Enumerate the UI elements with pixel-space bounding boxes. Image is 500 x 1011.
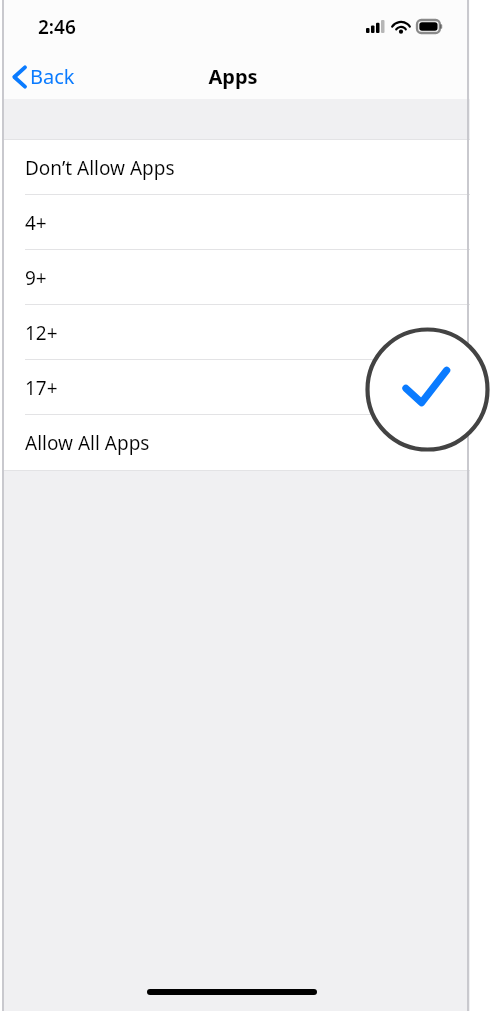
staticText: Don’t Allow Apps — [25, 155, 175, 181]
other: Selected rating checkmark — [365, 327, 490, 452]
staticText: Apps — [208, 63, 258, 90]
staticText: 4+ — [25, 210, 47, 236]
staticText: 17+ — [25, 375, 58, 401]
button[interactable]: Back — [3, 57, 85, 96]
button[interactable]: 17+ — [3, 360, 470, 415]
staticText: 12+ — [25, 320, 58, 346]
staticText: 2:46 — [38, 14, 76, 40]
button[interactable]: Don’t Allow Apps — [3, 140, 470, 195]
staticText: Allow All Apps — [25, 430, 150, 456]
staticText: 9+ — [25, 265, 47, 291]
button[interactable]: 4+ — [3, 195, 470, 250]
button[interactable]: 12+ — [3, 305, 470, 360]
button[interactable]: 9+ — [3, 250, 470, 305]
staticText: Back — [30, 63, 75, 90]
button[interactable]: Allow All Apps — [3, 415, 470, 470]
